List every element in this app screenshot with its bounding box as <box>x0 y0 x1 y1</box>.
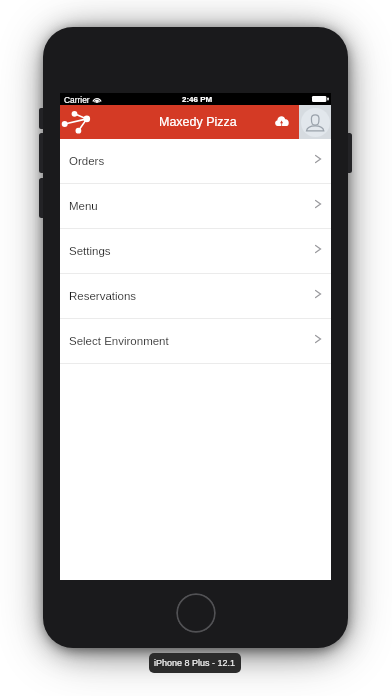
staticText: Orders <box>69 155 105 168</box>
button[interactable]: Settings <box>60 229 331 274</box>
staticText: Settings <box>69 245 111 258</box>
staticText: Reservations <box>69 290 137 303</box>
staticText: iPhone 8 Plus - 12.1 <box>154 658 236 668</box>
button[interactable]: Menu <box>60 184 331 229</box>
staticText: Select Environment <box>69 335 169 348</box>
button[interactable]: Upload <box>269 104 295 138</box>
button[interactable]: Menu <box>60 105 94 139</box>
button[interactable]: iPhone 8 Plus - 12.1 <box>149 653 241 673</box>
staticText: 2:46 PM <box>182 95 213 104</box>
staticText: Carrier <box>64 95 90 104</box>
button[interactable]: Profile <box>299 105 331 139</box>
staticText: Maxedy Pizza <box>159 115 237 129</box>
button[interactable]: Reservations <box>60 274 331 319</box>
button[interactable]: Orders <box>60 139 331 184</box>
staticText: Menu <box>69 200 98 213</box>
button[interactable]: Select Environment <box>60 319 331 364</box>
button[interactable]: Home <box>176 593 216 633</box>
